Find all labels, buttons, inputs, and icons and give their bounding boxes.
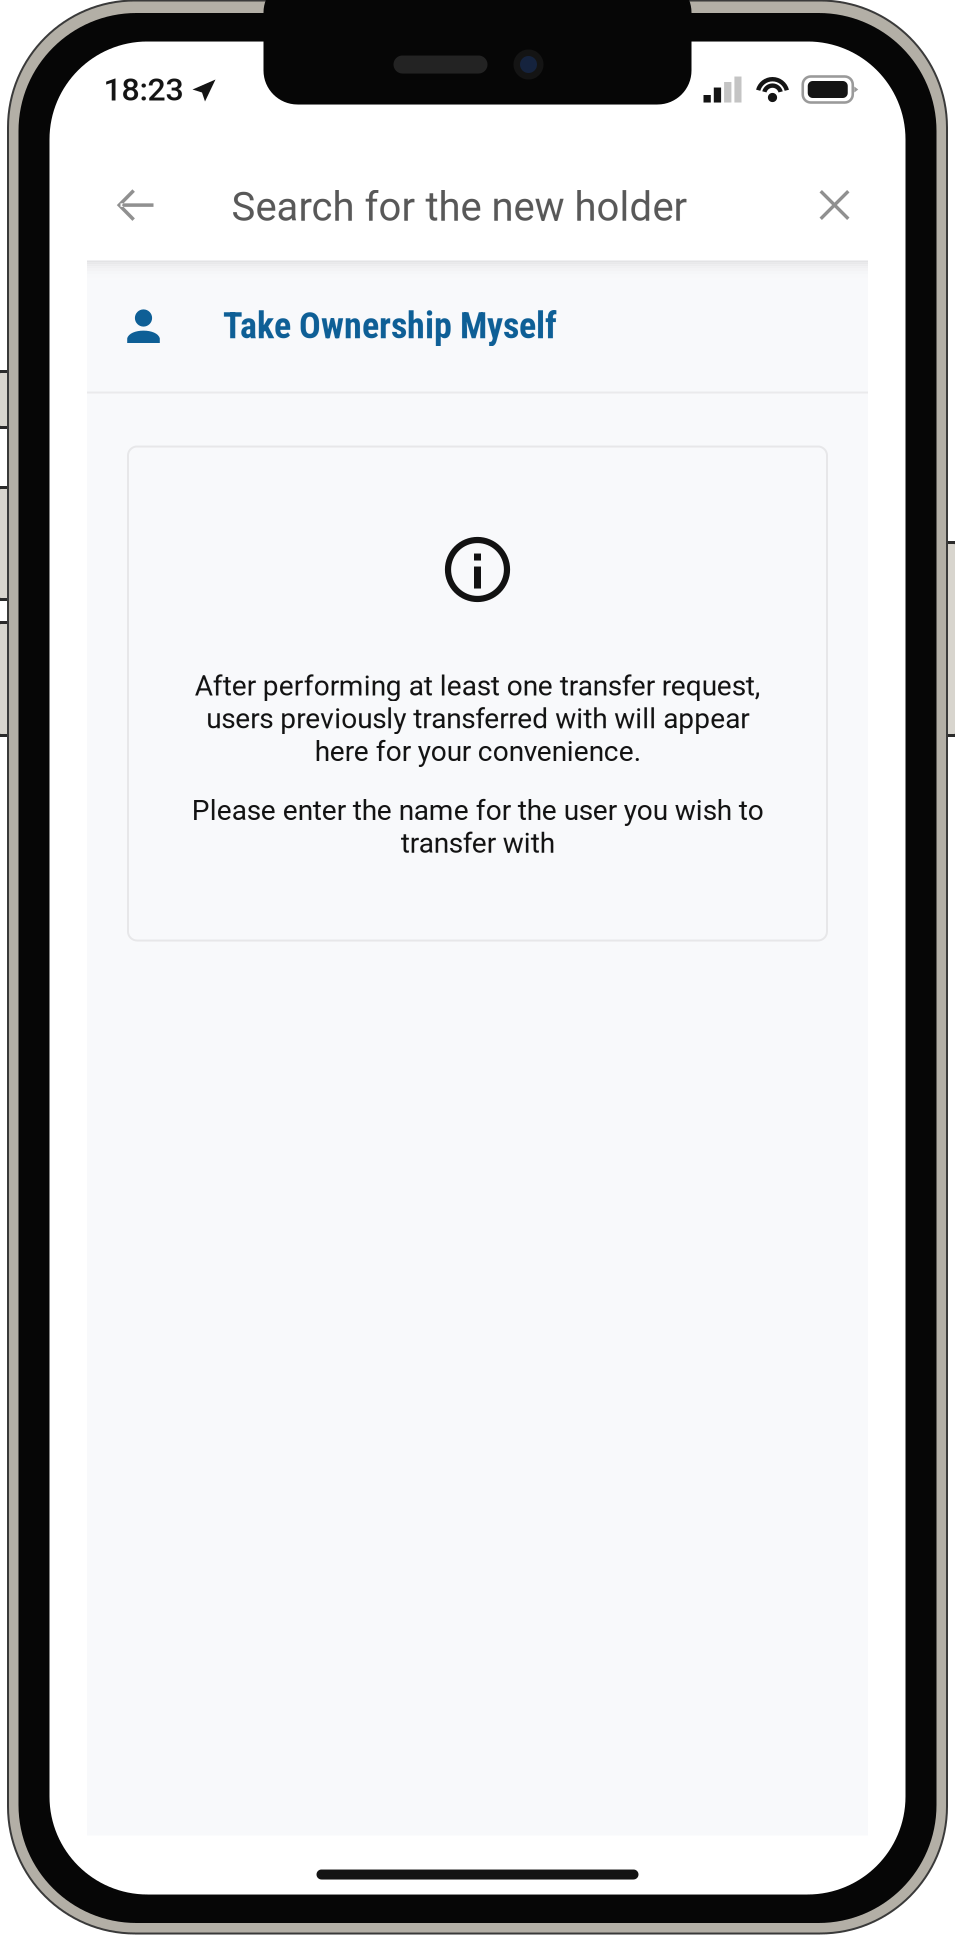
- staticText: Please enter the name for the user you w…: [191, 794, 763, 859]
- button[interactable]: Back: [85, 155, 185, 255]
- button[interactable]: Close: [784, 155, 884, 255]
- staticText: 18:23: [103, 71, 183, 108]
- button[interactable]: Take Ownership Myself: [87, 260, 868, 391]
- staticText: After performing at least one transfer r…: [194, 669, 760, 768]
- staticText: Take Ownership Myself: [223, 305, 557, 347]
- staticText: Search for the new holder: [231, 184, 687, 230]
